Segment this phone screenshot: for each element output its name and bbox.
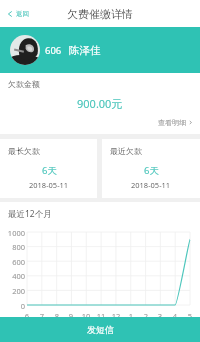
- staticText: 1: [125, 311, 137, 321]
- staticText: 欠款金额: [8, 79, 40, 89]
- staticText: 3: [154, 311, 166, 321]
- button[interactable]: 返回: [6, 10, 29, 18]
- staticText: 11: [95, 311, 107, 321]
- staticText: 200: [0, 286, 25, 296]
- staticText: 10: [80, 311, 92, 321]
- staticText: 600: [0, 257, 25, 267]
- button[interactable]: 发短信: [0, 317, 200, 342]
- staticText: 最近12个月: [8, 208, 52, 220]
- button[interactable]: 查看明细: [158, 118, 193, 127]
- staticText: 606: [45, 44, 62, 57]
- staticText: 最长欠款: [8, 146, 40, 156]
- staticText: 4: [169, 311, 181, 321]
- staticText: 欠费催缴详情: [67, 7, 133, 21]
- staticText: 最近欠款: [110, 146, 142, 156]
- button[interactable]: 最近欠款: [102, 139, 200, 198]
- staticText: 2018-05-11: [29, 180, 69, 190]
- staticText: 5: [184, 311, 196, 321]
- staticText: 9: [65, 311, 77, 321]
- staticText: 8: [51, 311, 63, 321]
- staticText: 12: [110, 311, 122, 321]
- staticText: 1000: [0, 228, 25, 238]
- staticText: 查看明细: [158, 118, 186, 127]
- staticText: 陈泽佳: [69, 44, 101, 57]
- staticText: 6天: [42, 164, 57, 177]
- staticText: 7: [36, 311, 48, 321]
- staticText: 返回: [16, 10, 29, 18]
- button[interactable]: 最长欠款: [0, 139, 97, 198]
- staticText: 发短信: [87, 324, 114, 335]
- staticText: 2: [140, 311, 152, 321]
- staticText: 0: [0, 301, 25, 311]
- staticText: 6天: [144, 164, 159, 177]
- staticText: 2018-05-11: [131, 180, 171, 190]
- staticText: 800: [0, 242, 25, 252]
- staticText: 900.00元: [77, 96, 123, 111]
- staticText: 6: [21, 311, 33, 321]
- staticText: 400: [0, 271, 25, 281]
